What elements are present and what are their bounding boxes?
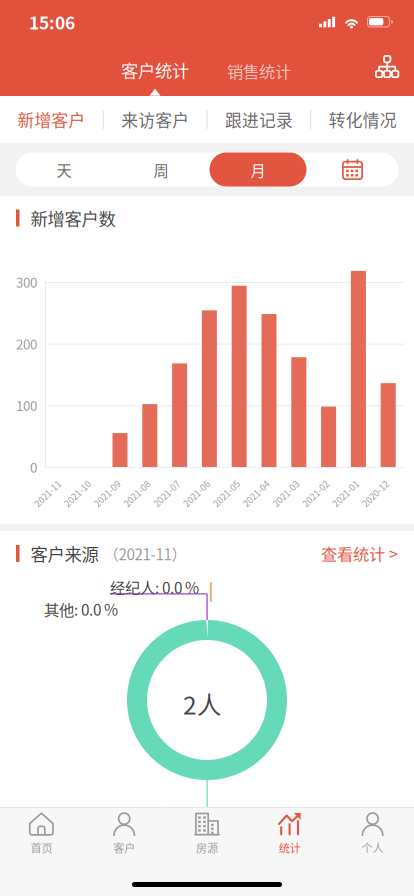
staticText: 月 bbox=[250, 158, 265, 181]
staticText: 其他: 0.0 % bbox=[44, 598, 118, 620]
staticText: 新增客户数 bbox=[30, 205, 115, 230]
staticText: 经纪人: 0.0 % bbox=[110, 576, 199, 598]
button[interactable]: 周 bbox=[112, 152, 209, 186]
staticText: （2021-11） bbox=[103, 542, 186, 565]
staticText: 2021-05 bbox=[210, 487, 243, 500]
button[interactable]: 房源 bbox=[166, 809, 248, 859]
staticText: 查看统计 > bbox=[321, 542, 398, 565]
staticText: 2020-12 bbox=[359, 487, 392, 500]
staticText: 300 bbox=[16, 272, 37, 292]
button[interactable]: 月 bbox=[209, 152, 306, 186]
staticText: 2021-01 bbox=[329, 487, 362, 500]
staticText: 2021-08 bbox=[120, 487, 153, 500]
staticText: 周 bbox=[153, 158, 168, 181]
button[interactable]: 客户 bbox=[83, 809, 166, 859]
staticText: 100 bbox=[16, 396, 37, 415]
staticText: 0 bbox=[30, 457, 37, 477]
staticText: 客户统计 bbox=[121, 57, 189, 82]
button[interactable]: 转化情况 bbox=[311, 96, 414, 143]
staticText: 统计 bbox=[279, 840, 301, 856]
button[interactable]: 选择日期 bbox=[306, 152, 398, 186]
button[interactable]: 组织架构 bbox=[375, 55, 399, 78]
staticText: 房源 bbox=[196, 840, 218, 856]
button[interactable]: 来访客户 bbox=[104, 96, 207, 143]
staticText: 15:06 bbox=[29, 9, 75, 34]
staticText: 200 bbox=[16, 334, 37, 353]
staticText: 2021-02 bbox=[299, 487, 332, 500]
staticText: 个人 bbox=[362, 840, 384, 856]
staticText: 跟进记录 bbox=[225, 107, 293, 132]
staticText: 2021-10 bbox=[61, 487, 94, 500]
button[interactable]: 客户统计 bbox=[103, 44, 207, 96]
staticText: 天 bbox=[56, 158, 71, 181]
button[interactable]: 统计 bbox=[248, 809, 331, 859]
button[interactable]: 新增客户 bbox=[0, 96, 103, 143]
staticText: 2021-03 bbox=[269, 487, 302, 500]
staticText: 2人 bbox=[183, 686, 221, 721]
staticText: 2021-04 bbox=[239, 487, 272, 500]
staticText: 2021-07 bbox=[150, 487, 183, 500]
staticText: 2021-06 bbox=[180, 487, 213, 500]
staticText: 销售统计 bbox=[227, 59, 291, 83]
staticText: 来访客户 bbox=[121, 107, 189, 132]
button[interactable]: 个人 bbox=[331, 809, 414, 859]
button[interactable]: 查看统计 > bbox=[321, 542, 398, 565]
button[interactable]: 销售统计 bbox=[207, 44, 311, 96]
staticText: 客场: 100.0 % bbox=[155, 802, 245, 824]
staticText: 2021-09 bbox=[90, 487, 123, 500]
staticText: 首页 bbox=[30, 840, 52, 856]
staticText: 转化情况 bbox=[329, 107, 397, 132]
button[interactable]: 天 bbox=[15, 152, 112, 186]
button[interactable]: 首页 bbox=[0, 809, 83, 859]
staticText: 客户来源 bbox=[30, 541, 98, 566]
button[interactable]: 跟进记录 bbox=[207, 96, 310, 143]
staticText: 新增客户 bbox=[17, 107, 85, 132]
staticText: 2021-11 bbox=[31, 487, 64, 500]
staticText: 客户 bbox=[113, 840, 135, 856]
